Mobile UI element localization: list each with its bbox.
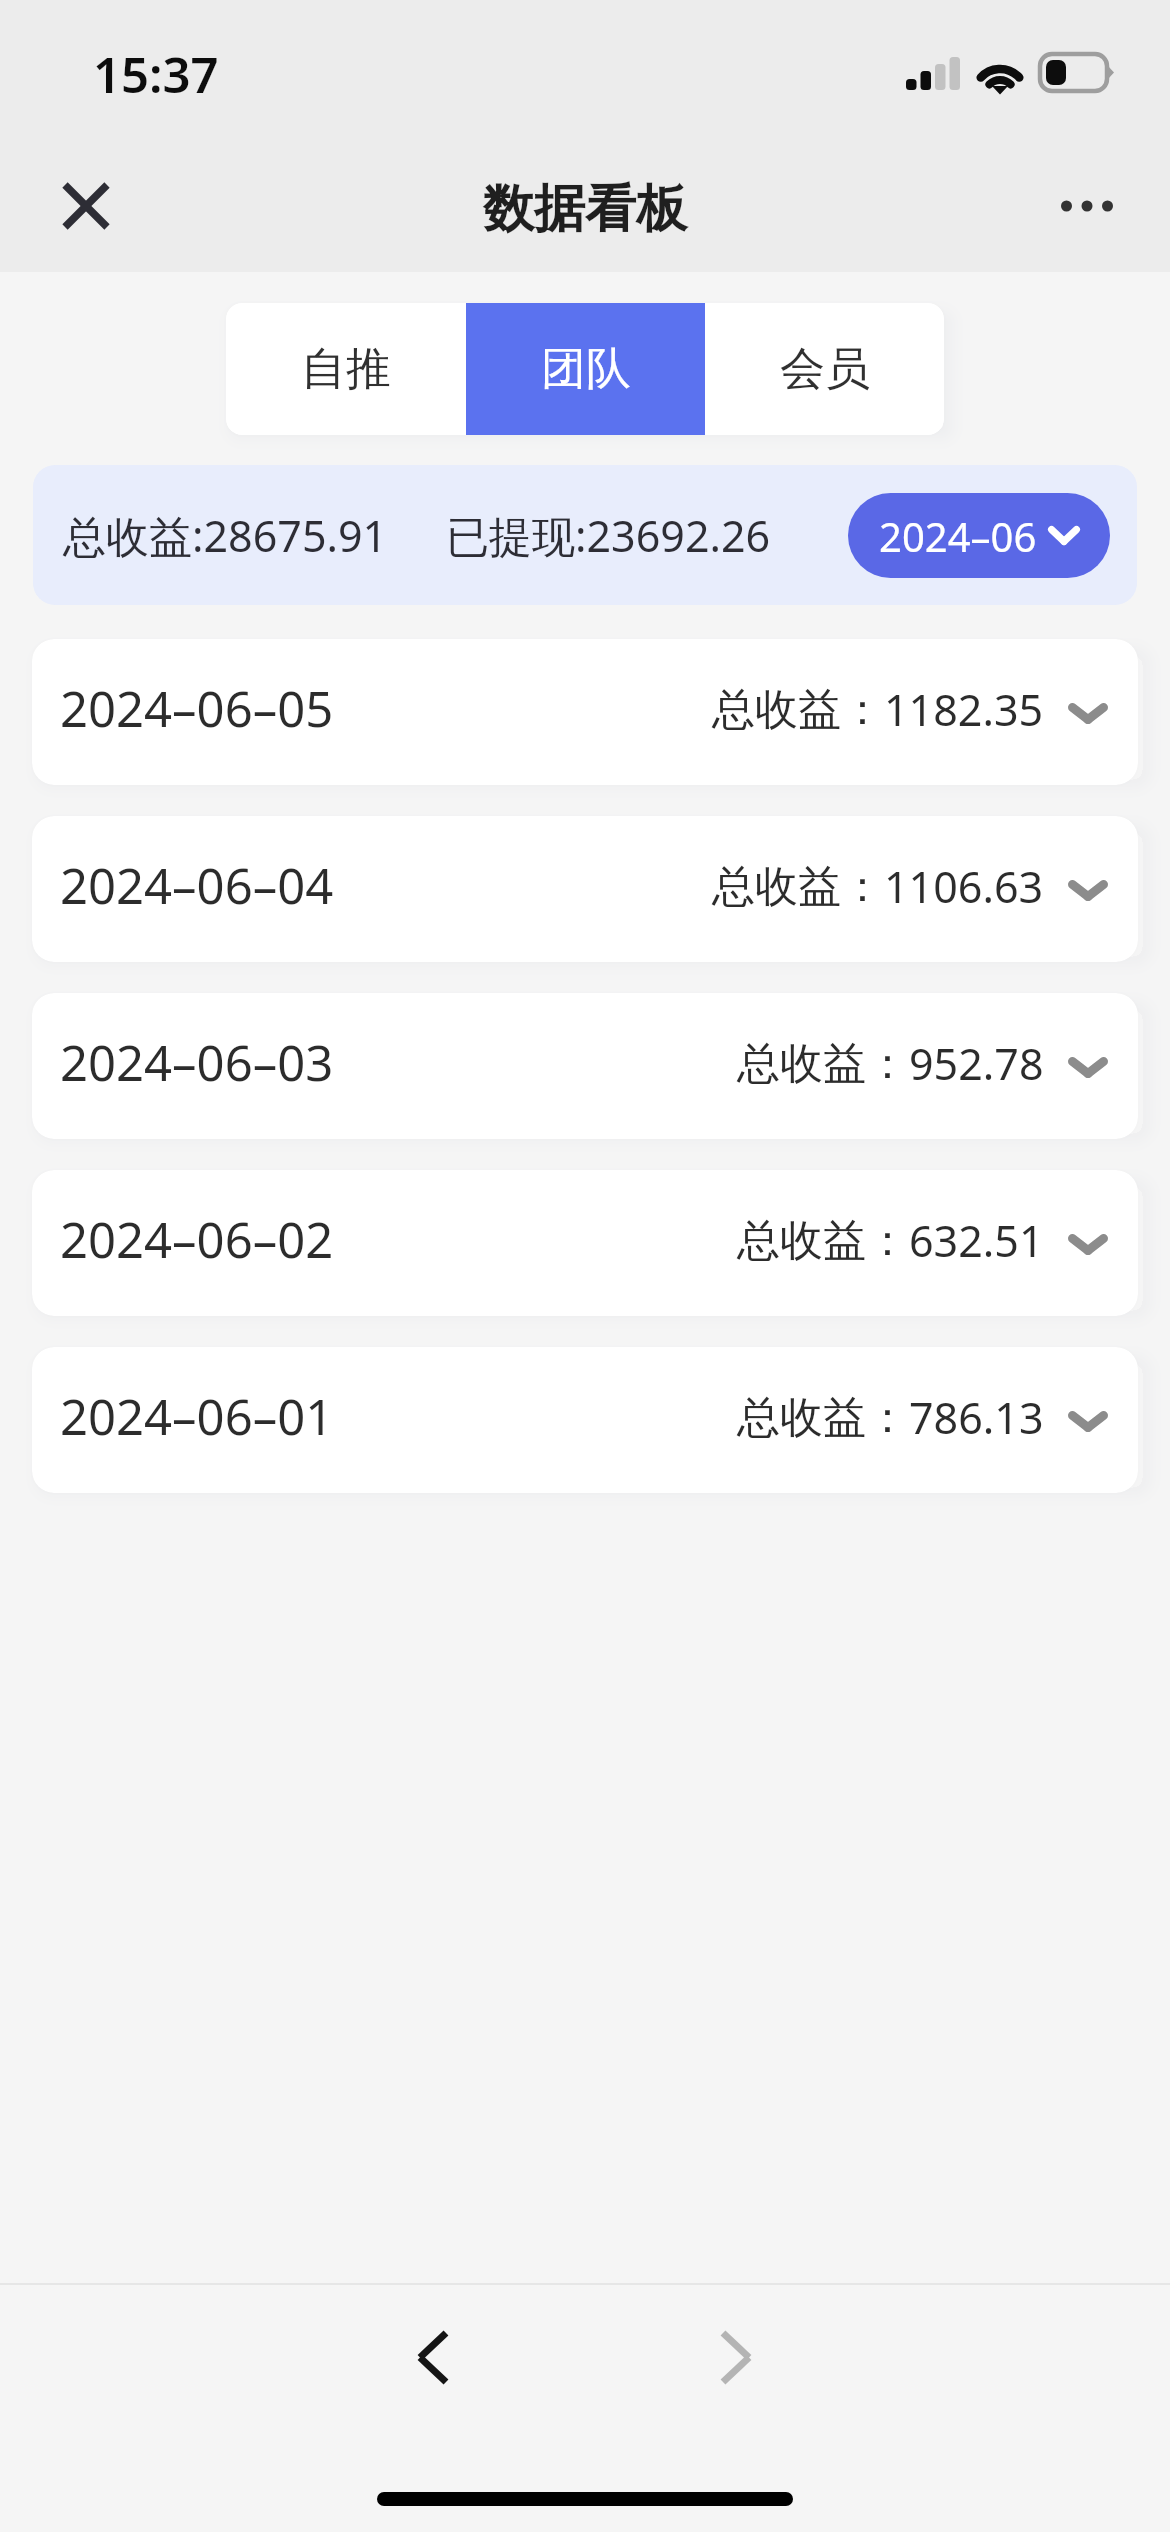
button[interactable]: 2024–06–03	[32, 993, 1138, 1139]
staticText: 总收益：	[712, 860, 884, 914]
staticText: 2024–06	[879, 509, 1037, 563]
staticText: 总收益：	[712, 683, 884, 737]
staticText: 1106.63	[884, 857, 1044, 916]
staticText: 2024–06–05	[60, 675, 334, 742]
staticText: 2024–06–01	[60, 1383, 334, 1450]
button[interactable]: 团队	[466, 303, 705, 435]
staticText: 总收益：	[737, 1214, 909, 1268]
staticText: 15:37	[93, 41, 219, 108]
staticText: 总收益：	[737, 1037, 909, 1091]
staticText: 632.51	[909, 1211, 1044, 1270]
staticText: 786.13	[909, 1388, 1044, 1447]
button[interactable]: Next page	[681, 2302, 791, 2412]
staticText: 2024–06–03	[60, 1029, 334, 1096]
staticText: 已提现:23692.26	[446, 506, 771, 565]
button[interactable]: 2024–06–04	[32, 816, 1138, 962]
staticText: 团队	[541, 341, 631, 398]
staticText: 数据看板	[483, 177, 687, 241]
staticText: 自推	[301, 341, 391, 398]
button[interactable]: 2024–06	[848, 493, 1110, 578]
staticText: 2024–06–02	[60, 1206, 334, 1273]
staticText: 1182.35	[884, 680, 1044, 739]
staticText: 2024–06–04	[60, 852, 334, 919]
button[interactable]: 2024–06–02	[32, 1170, 1138, 1316]
button[interactable]: 2024–06–05	[32, 639, 1138, 785]
button[interactable]: 2024–06–01	[32, 1347, 1138, 1493]
button[interactable]: Previous page	[378, 2302, 488, 2412]
button[interactable]: 自推	[226, 303, 466, 435]
staticText: 总收益:28675.91	[63, 506, 388, 565]
staticText: 952.78	[909, 1034, 1044, 1093]
button[interactable]: More options	[1033, 160, 1141, 252]
button[interactable]: Close	[40, 160, 132, 252]
staticText: 总收益：	[737, 1391, 909, 1445]
button[interactable]: 会员	[705, 303, 944, 435]
staticText: 会员	[780, 341, 870, 398]
